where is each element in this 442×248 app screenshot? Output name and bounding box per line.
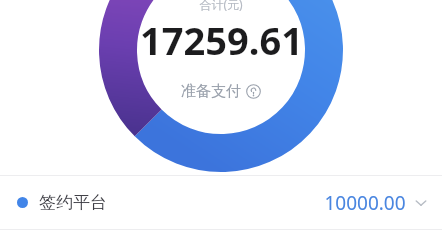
button[interactable]: 签约平台 — [0, 176, 442, 229]
staticText: 合计(元) — [199, 0, 243, 12]
staticText: 签约平台 — [39, 192, 107, 213]
staticText: 10000.00 — [324, 190, 406, 216]
button[interactable]: 准备支付说明 — [177, 80, 265, 103]
other: 展开 — [414, 196, 428, 210]
staticText: 17259.61 — [140, 14, 303, 66]
staticText: 准备支付 — [181, 82, 241, 101]
